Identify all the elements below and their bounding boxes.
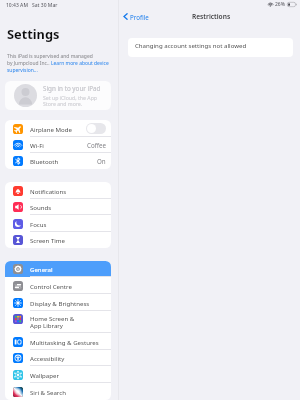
- staticText: Wi-Fi: [30, 141, 44, 149]
- staticText: Profile: [130, 13, 149, 21]
- button[interactable]: Wi-Fi: [5, 137, 111, 153]
- button[interactable]: Multitasking & Gestures: [5, 333, 111, 350]
- staticText: Restrictions: [192, 12, 231, 21]
- staticText: Siri & Search: [30, 388, 66, 396]
- button[interactable]: Focus: [5, 215, 111, 232]
- button[interactable]: Sounds: [5, 199, 111, 215]
- button[interactable]: Bluetooth: [5, 153, 111, 169]
- staticText: Notifications: [30, 187, 67, 195]
- button[interactable]: Airplane Mode: [5, 120, 111, 137]
- staticText: Changing account settings not allowed: [135, 41, 247, 49]
- staticText: On: [97, 157, 106, 165]
- staticText: Bluetooth: [30, 157, 59, 165]
- staticText: 10:43 AM: [6, 2, 28, 9]
- button[interactable]: Changing account settings not allowed: [128, 38, 293, 57]
- staticText: Sounds: [30, 203, 52, 211]
- staticText: Settings: [7, 25, 60, 42]
- staticText: Home Screen & App Library: [30, 314, 75, 330]
- staticText: General: [30, 265, 53, 273]
- staticText: by Jumpcloud Inc..: [7, 60, 51, 67]
- staticText: Wallpaper: [30, 371, 59, 379]
- button[interactable]: Siri & Search: [5, 383, 111, 400]
- button[interactable]: Control Centre: [5, 277, 111, 294]
- staticText: Control Centre: [30, 282, 72, 290]
- staticText: Airplane Mode: [30, 125, 72, 133]
- staticText: supervision...: [7, 67, 38, 74]
- button[interactable]: Back to Profile: [123, 12, 149, 21]
- button[interactable]: Screen Time: [5, 232, 111, 248]
- button[interactable]: Sign in to your iPad: [5, 81, 111, 110]
- staticText: Screen Time: [30, 236, 65, 244]
- button[interactable]: Home Screen & App Library: [5, 311, 111, 333]
- button[interactable]: Accessibility: [5, 350, 111, 366]
- button[interactable]: General: [5, 261, 111, 277]
- staticText: Set up iCloud, the App Store and more.: [43, 94, 98, 108]
- staticText: This iPad is supervised and managed: [7, 53, 93, 60]
- staticText: Focus: [30, 220, 47, 228]
- staticText: Coffee: [87, 141, 106, 149]
- staticText: Sat 30 Mar: [32, 2, 58, 9]
- staticText: Sign in to your iPad: [43, 84, 101, 93]
- staticText: Display & Brightness: [30, 299, 90, 307]
- staticText: Multitasking & Gestures: [30, 338, 99, 346]
- button[interactable]: Notifications: [5, 182, 111, 199]
- button[interactable]: Display & Brightness: [5, 294, 111, 311]
- staticText: Accessibility: [30, 354, 65, 362]
- button[interactable]: Wallpaper: [5, 366, 111, 383]
- staticText: 26%: [275, 1, 285, 8]
- staticText: Learn more about device: [51, 60, 109, 67]
